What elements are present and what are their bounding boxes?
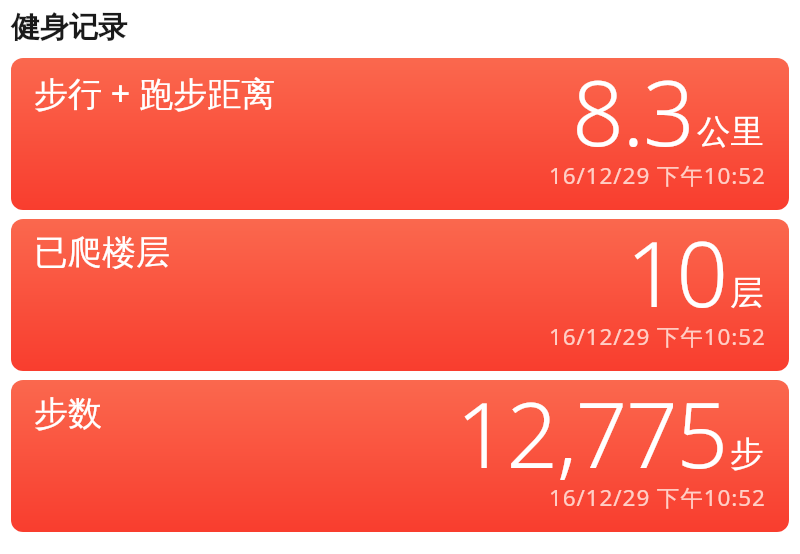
staticText: 16/12/29 下午10:52 (549, 482, 766, 513)
staticText: 12,775 (456, 380, 727, 495)
staticText: 健身记录 (11, 9, 127, 46)
staticText: 步行 + 跑步距离 (34, 70, 276, 116)
staticText: 16/12/29 下午10:52 (549, 160, 766, 191)
other: 健身记录 (11, 0, 789, 554)
staticText: 已爬楼层 (34, 231, 170, 274)
staticText: 10 (626, 219, 727, 334)
button[interactable]: 步数 (11, 380, 789, 532)
button[interactable]: 步行 + 跑步距离 (11, 58, 789, 210)
staticText: 16/12/29 下午10:52 (549, 321, 766, 352)
staticText: 步数 (34, 392, 102, 435)
staticText: 层 (730, 272, 764, 314)
button[interactable]: 已爬楼层 (11, 219, 789, 371)
staticText: 公里 (697, 111, 764, 153)
staticText: 步 (730, 433, 764, 475)
staticText: 8.3 (572, 58, 694, 173)
